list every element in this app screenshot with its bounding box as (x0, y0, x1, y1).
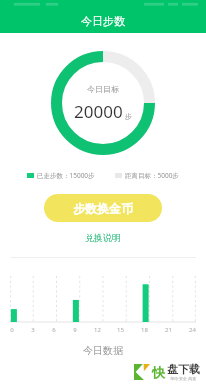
staticText: 已走步数：15000步 (37, 171, 95, 180)
staticText: 华信·安全·高速 (170, 376, 197, 381)
staticText: 6 (52, 326, 56, 334)
staticText: 距离目标：5000步 (125, 171, 179, 180)
staticText: 步数换金币 (73, 201, 133, 216)
staticText: 21 (165, 326, 172, 334)
staticText: 24 (189, 326, 196, 334)
staticText: 9 (73, 326, 77, 334)
staticText: 12 (94, 326, 101, 334)
staticText: 盘下载 (167, 362, 200, 376)
button[interactable]: 步数换金币 (44, 194, 162, 222)
staticText: 15 (117, 326, 124, 334)
staticText: 今日数据 (83, 344, 123, 357)
staticText: 快 (152, 364, 165, 380)
button[interactable]: 兑换说明 (79, 230, 127, 245)
staticText: 0 (10, 326, 14, 334)
staticText: 步 (125, 112, 132, 121)
staticText: 20000 (74, 100, 123, 123)
staticText: 18 (141, 326, 148, 334)
staticText: 今日目标 (87, 84, 119, 94)
staticText: 兑换说明 (85, 232, 121, 243)
staticText: 3 (31, 326, 35, 334)
staticText: 今日步数 (81, 14, 125, 28)
